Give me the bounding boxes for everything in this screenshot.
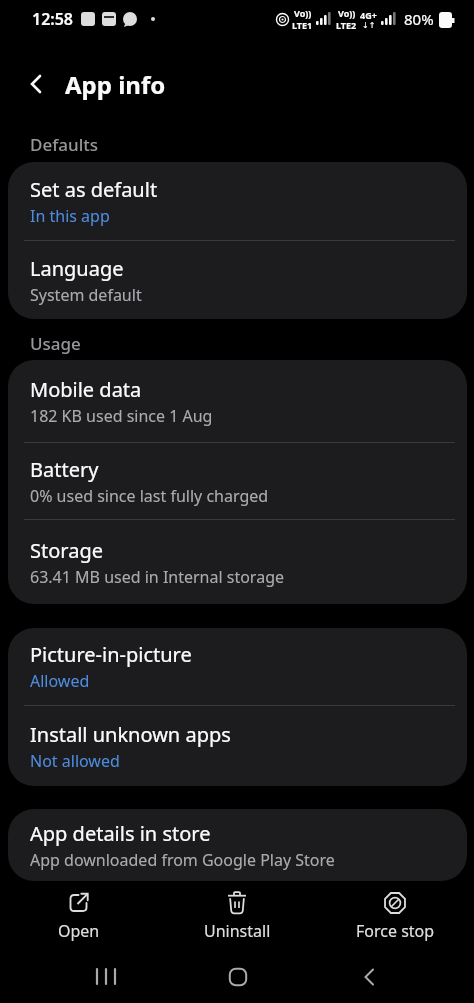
button[interactable]	[16, 64, 56, 104]
staticText: ↓↑	[362, 21, 376, 30]
button[interactable]: Language	[8, 241, 467, 319]
button[interactable]: Mobile data	[8, 360, 467, 442]
staticText: Battery	[30, 456, 99, 483]
staticText: Install unknown apps	[30, 721, 231, 748]
button[interactable]	[40, 951, 172, 1003]
staticText: 80%	[404, 9, 434, 29]
staticText: Not allowed	[30, 750, 120, 772]
staticText: App downloaded from Google Play Store	[30, 849, 335, 871]
staticText: Mobile data	[30, 376, 142, 403]
staticText: In this app	[30, 205, 110, 227]
staticText: Defaults	[30, 133, 98, 156]
button[interactable]: Uninstall	[158, 890, 316, 942]
button[interactable]: Storage	[8, 520, 467, 604]
staticText: LTE1	[292, 19, 313, 31]
staticText: Set as default	[30, 176, 158, 203]
staticText: Allowed	[30, 670, 90, 692]
staticText: 4G+	[360, 9, 377, 21]
button[interactable]: Battery	[8, 443, 467, 519]
staticText: Vo))	[338, 7, 356, 19]
staticText: Vo))	[294, 7, 312, 19]
staticText: LTE2	[336, 19, 357, 31]
button[interactable]: Set as default	[8, 162, 467, 240]
staticText: 12:58	[32, 8, 74, 30]
staticText: Force stop	[356, 920, 435, 942]
button[interactable]	[303, 951, 434, 1003]
button[interactable]: Open	[0, 890, 158, 942]
button[interactable]: Force stop	[316, 890, 474, 942]
staticText: App info	[65, 68, 166, 101]
staticText: Picture-in-picture	[30, 641, 192, 668]
button[interactable]: Install unknown apps	[8, 706, 467, 786]
staticText: System default	[30, 284, 142, 306]
staticText: Usage	[30, 332, 81, 355]
staticText: Language	[30, 255, 124, 282]
staticText: 0% used since last fully charged	[30, 485, 269, 507]
button[interactable]	[172, 951, 303, 1003]
staticText: App details in store	[30, 820, 211, 847]
staticText: 63.41 MB used in Internal storage	[30, 566, 285, 588]
button[interactable]: Picture-in-picture	[8, 628, 467, 705]
staticText: 182 KB used since 1 Aug	[30, 405, 213, 427]
button[interactable]: App details in store	[8, 809, 467, 881]
staticText: Uninstall	[204, 920, 271, 942]
staticText: Open	[58, 920, 100, 942]
staticText: Storage	[30, 537, 103, 564]
